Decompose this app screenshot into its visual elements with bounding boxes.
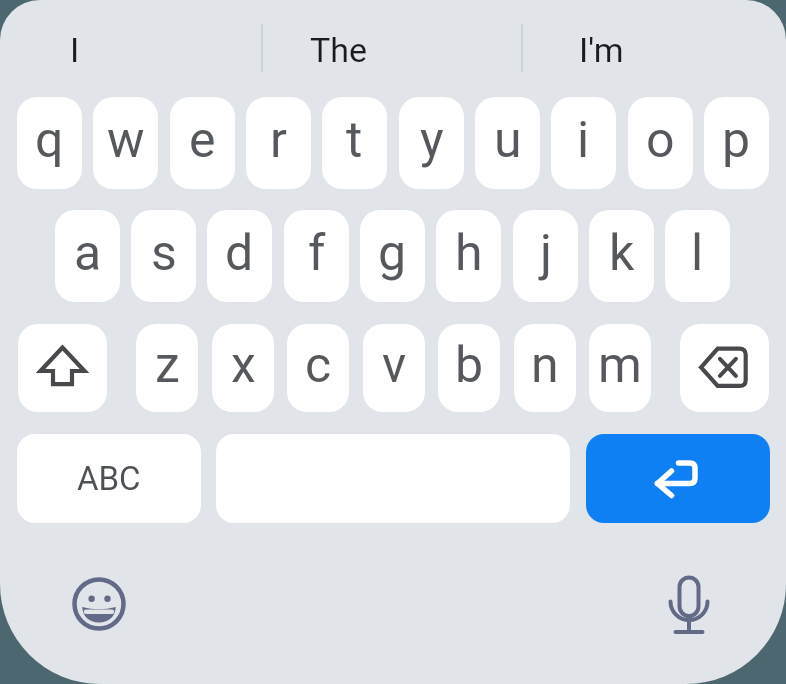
staticText: m xyxy=(598,336,642,395)
button[interactable]: o xyxy=(628,97,693,189)
button[interactable] xyxy=(586,434,770,523)
button[interactable]: w xyxy=(93,97,158,189)
button[interactable]: h xyxy=(436,210,501,302)
button[interactable]: f xyxy=(284,210,349,302)
staticText: o xyxy=(646,111,675,170)
staticText: p xyxy=(722,111,751,170)
button[interactable]: e xyxy=(170,97,235,189)
button[interactable]: m xyxy=(589,324,651,412)
button[interactable] xyxy=(66,571,132,637)
staticText: r xyxy=(270,111,287,170)
staticText: y xyxy=(420,111,444,170)
button[interactable]: u xyxy=(475,97,540,189)
button[interactable]: i xyxy=(551,97,616,189)
staticText: e xyxy=(189,111,216,170)
staticText: g xyxy=(378,224,407,283)
staticText: h xyxy=(455,224,483,283)
staticText: f xyxy=(308,224,326,283)
button[interactable]: t xyxy=(322,97,387,189)
staticText: c xyxy=(305,336,332,395)
button[interactable]: x xyxy=(212,324,274,412)
button[interactable]: r xyxy=(246,97,311,189)
button[interactable]: q xyxy=(17,97,82,189)
button[interactable]: ABC xyxy=(17,434,201,523)
button[interactable] xyxy=(656,571,722,637)
staticText: a xyxy=(74,224,102,283)
button[interactable]: d xyxy=(207,210,272,302)
staticText: u xyxy=(494,111,522,170)
button[interactable]: p xyxy=(704,97,769,189)
button[interactable]: y xyxy=(399,97,464,189)
staticText: d xyxy=(225,224,254,283)
button[interactable]: n xyxy=(514,324,576,412)
staticText: s xyxy=(151,224,177,283)
button[interactable]: v xyxy=(363,324,425,412)
button[interactable]: I'm xyxy=(521,18,681,82)
button[interactable]: l xyxy=(665,210,730,302)
button[interactable] xyxy=(18,324,107,412)
staticText: i xyxy=(577,111,590,170)
staticText: k xyxy=(609,224,635,283)
staticText: t xyxy=(346,111,363,170)
button[interactable]: a xyxy=(55,210,120,302)
button[interactable] xyxy=(680,324,769,412)
staticText: l xyxy=(691,224,704,283)
staticText: b xyxy=(455,336,484,395)
staticText: I xyxy=(70,30,80,70)
button[interactable]: z xyxy=(136,324,198,412)
button[interactable]: b xyxy=(438,324,500,412)
staticText: w xyxy=(107,111,145,170)
button[interactable]: s xyxy=(131,210,196,302)
button[interactable]: c xyxy=(287,324,349,412)
staticText: x xyxy=(231,336,256,395)
button[interactable]: g xyxy=(360,210,425,302)
staticText: The xyxy=(310,30,368,70)
staticText: I'm xyxy=(579,30,624,70)
button[interactable]: j xyxy=(513,210,578,302)
staticText: ABC xyxy=(77,459,141,498)
staticText: z xyxy=(155,336,180,395)
button[interactable]: I xyxy=(0,18,155,82)
staticText: v xyxy=(382,336,407,395)
staticText: n xyxy=(531,336,559,395)
button[interactable]: The xyxy=(259,18,419,82)
button[interactable]: k xyxy=(589,210,654,302)
staticText: j xyxy=(540,224,552,283)
staticText: q xyxy=(35,111,64,170)
